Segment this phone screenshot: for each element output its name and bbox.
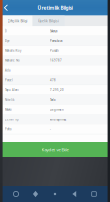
staticText: Kaydet ve Ekle [41,147,68,152]
staticText: Pusatlı [50,49,59,52]
staticText: Değirmen [50,108,64,111]
staticText: 7.295,20 [50,88,64,92]
staticText: Mahalle/Köy [5,49,21,52]
button[interactable]: Overview [90,190,97,198]
staticText: 169787 [50,59,62,62]
staticText: Ada [5,69,10,72]
staticText: İl [5,29,7,33]
button[interactable]: Pafta [0,124,110,134]
staticText: Mevkii [5,108,12,111]
button[interactable]: Nitelik [0,95,110,105]
staticText: Ana Taşınmaz [50,118,66,121]
button[interactable]: Üyelik Bilgisi [33,16,65,26]
button[interactable]: Tapu Alanı [0,85,110,95]
button[interactable]: Mevkii [0,105,110,115]
staticText: Çiftçilik Bilgi [8,19,28,23]
button[interactable]: Mahalle/Köy [0,46,110,56]
button[interactable]: Recents [32,190,39,198]
button[interactable]: Assistant [51,190,58,198]
staticText: Pafta [5,127,11,131]
staticText: Pamukova [50,39,62,43]
button[interactable]: Ada [0,65,110,75]
button[interactable]: Home [12,190,19,198]
staticText: 478 [50,78,56,82]
button[interactable]: Parsel [0,75,110,85]
staticText: Zemin Tip [5,118,19,121]
staticText: Sakarya [50,29,57,33]
staticText: Mahalle No [5,59,20,62]
button[interactable]: Back [0,0,12,16]
staticText: Tapu Alanı [5,88,19,92]
staticText: Parsel [5,78,13,82]
button[interactable]: Mahalle No [0,56,110,65]
button[interactable]: Back [71,190,78,198]
staticText: Üyelik Bilgisi [38,19,59,23]
staticText: İlçe [5,39,10,43]
staticText: Üretimlik Bilgisi [38,4,73,11]
button[interactable]: İlçe [0,36,110,46]
staticText: Tarla [50,98,55,102]
button[interactable]: Çiftçilik Bilgi [3,16,33,26]
button[interactable]: Kaydet ve Ekle [0,142,110,157]
staticText: Nitelik [5,98,14,102]
staticText: - [50,127,51,131]
button[interactable]: İl [0,26,110,36]
button[interactable]: Zemin Tip [0,115,110,124]
